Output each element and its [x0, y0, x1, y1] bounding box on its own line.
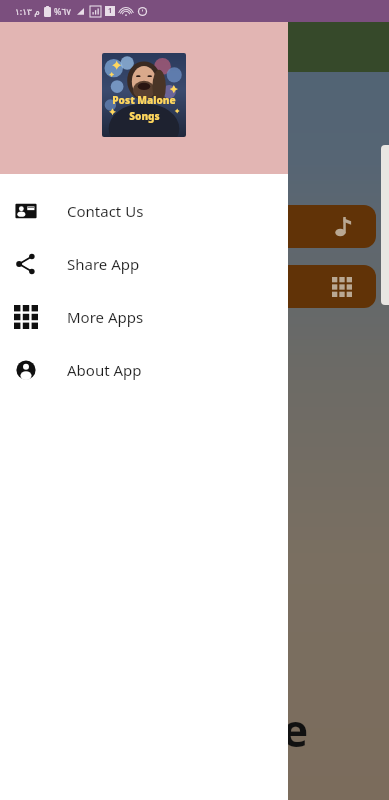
staticText: %٦٧ — [54, 5, 72, 17]
button[interactable]: Share App — [0, 237, 288, 290]
staticText: Post Malone — [112, 93, 176, 107]
button[interactable]: Contact Us — [0, 184, 288, 237]
staticText: م ١:١٣ — [15, 5, 40, 17]
staticText: About App — [67, 360, 142, 380]
staticText: Share App — [67, 254, 140, 274]
staticText: More Apps — [67, 307, 144, 327]
button[interactable]: Songs — [250, 205, 376, 248]
staticText: Contact Us — [67, 201, 144, 221]
button[interactable]: More Apps — [0, 290, 288, 343]
staticText: Songs — [129, 109, 160, 123]
button[interactable]: About App — [0, 343, 288, 396]
button[interactable]: More apps — [250, 265, 376, 308]
staticText: e — [282, 700, 309, 760]
staticText: 1 — [108, 6, 113, 16]
